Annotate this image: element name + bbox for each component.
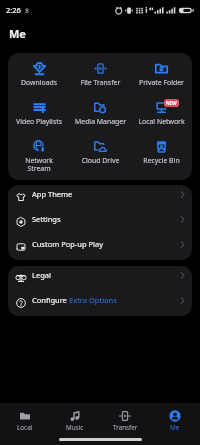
staticText: Configure bbox=[32, 295, 69, 305]
staticText: Me bbox=[170, 423, 180, 432]
button[interactable]: Settings bbox=[8, 210, 192, 235]
button[interactable]: Transfer bbox=[100, 403, 150, 433]
staticText: Transfer bbox=[113, 423, 138, 432]
button[interactable]: Music bbox=[50, 403, 100, 433]
staticText: NEW bbox=[166, 100, 177, 106]
button[interactable]: Legal bbox=[8, 266, 192, 291]
button[interactable]: Media Manager bbox=[70, 97, 131, 136]
button[interactable]: Network Stream bbox=[8, 136, 70, 175]
staticText: File Transfer bbox=[70, 78, 131, 87]
button[interactable]: Cloud Drive bbox=[70, 136, 131, 175]
staticText: Extra Options bbox=[69, 295, 117, 305]
button[interactable]: Downloads bbox=[8, 58, 70, 97]
button[interactable]: Video Playlists bbox=[8, 97, 70, 136]
button[interactable]: Private Folder bbox=[131, 58, 192, 97]
staticText: 2:26 bbox=[6, 5, 21, 15]
staticText: Private Folder bbox=[131, 78, 192, 87]
staticText: Music bbox=[66, 423, 84, 432]
staticText: Me bbox=[9, 26, 26, 41]
staticText: Video Playlists bbox=[8, 117, 70, 126]
staticText: Local bbox=[17, 423, 33, 432]
button[interactable]: File Transfer bbox=[70, 58, 131, 97]
staticText: Legal bbox=[32, 270, 51, 280]
button[interactable]: Local Network bbox=[131, 97, 192, 136]
staticText: App Theme bbox=[32, 189, 73, 199]
button[interactable]: Me bbox=[150, 403, 200, 433]
button[interactable]: Custom Pop-up Play bbox=[8, 235, 192, 260]
staticText: Custom Pop-up Play bbox=[32, 239, 103, 249]
button[interactable]: App Theme bbox=[8, 185, 192, 210]
button[interactable]: Local bbox=[0, 403, 50, 433]
staticText: Settings bbox=[32, 214, 61, 224]
staticText: Local Network bbox=[131, 117, 192, 126]
button[interactable]: Configure bbox=[8, 291, 192, 316]
staticText: Network Stream bbox=[8, 156, 70, 173]
staticText: Media Manager bbox=[70, 117, 131, 126]
staticText: Recycle Bin bbox=[131, 156, 192, 165]
button[interactable]: Recycle Bin bbox=[131, 136, 192, 175]
staticText: Downloads bbox=[8, 78, 70, 87]
staticText: Cloud Drive bbox=[70, 156, 131, 165]
